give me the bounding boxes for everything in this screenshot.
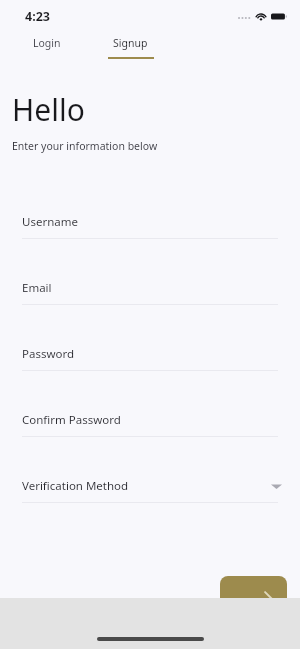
other: Open verification method options bbox=[271, 483, 282, 490]
staticText: Login bbox=[33, 36, 61, 50]
staticText: Enter your information below bbox=[12, 139, 158, 153]
staticText: Verification Method bbox=[22, 478, 129, 494]
button[interactable]: Password bbox=[0, 338, 300, 371]
staticText: Username bbox=[22, 214, 78, 230]
staticText: Hello bbox=[12, 89, 85, 130]
button[interactable]: Verification Method bbox=[0, 470, 300, 503]
button[interactable]: Email bbox=[0, 272, 300, 305]
button[interactable]: Login bbox=[20, 32, 74, 54]
button[interactable]: Signup bbox=[104, 32, 157, 59]
button[interactable]: Continue bbox=[220, 576, 287, 623]
staticText: Email bbox=[22, 280, 52, 296]
button[interactable]: Username bbox=[0, 206, 300, 239]
staticText: 4:23 bbox=[25, 8, 50, 25]
staticText: Password bbox=[22, 346, 75, 362]
staticText: Confirm Password bbox=[22, 412, 121, 428]
button[interactable]: Confirm Password bbox=[0, 404, 300, 437]
staticText: Signup bbox=[113, 36, 148, 50]
